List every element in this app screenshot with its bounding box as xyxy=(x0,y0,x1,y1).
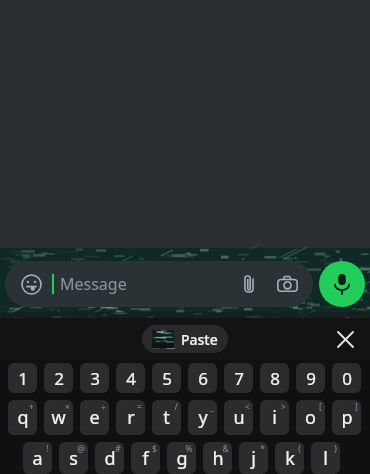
button[interactable]: 1 xyxy=(8,363,37,393)
staticText: 0 xyxy=(342,367,352,390)
staticText: ) xyxy=(334,443,337,455)
staticText: < xyxy=(245,401,250,413)
staticText: o xyxy=(305,405,316,430)
button[interactable]: j xyxy=(239,442,268,474)
button[interactable]: l xyxy=(311,442,340,474)
button[interactable]: 4 xyxy=(116,363,145,393)
staticText: # xyxy=(115,443,121,455)
staticText: f xyxy=(142,446,149,471)
staticText: g xyxy=(176,446,188,471)
staticText: / xyxy=(174,401,178,413)
staticText: 7 xyxy=(234,367,244,390)
button[interactable]: t xyxy=(152,400,181,435)
staticText: y xyxy=(198,405,208,430)
staticText: $ xyxy=(152,443,157,455)
button[interactable]: e xyxy=(80,400,109,435)
staticText: Paste xyxy=(181,330,218,349)
button[interactable]: f xyxy=(131,442,160,474)
staticText: t xyxy=(163,405,170,430)
staticText: Message xyxy=(60,273,232,295)
button[interactable]: g xyxy=(167,442,196,474)
button[interactable]: 5 xyxy=(152,363,181,393)
button[interactable]: 7 xyxy=(224,363,253,393)
button[interactable]: h xyxy=(203,442,232,474)
staticText: ÷ xyxy=(101,401,106,413)
button[interactable]: r xyxy=(116,400,145,435)
staticText: r xyxy=(127,405,135,430)
staticText: e xyxy=(89,405,100,430)
staticText: 1 xyxy=(18,367,28,390)
button[interactable]: Emoji xyxy=(5,261,313,307)
staticText: ] xyxy=(355,401,358,413)
staticText: d xyxy=(104,446,116,471)
button[interactable]: Emoji xyxy=(16,269,46,299)
staticText: h xyxy=(212,446,224,471)
button[interactable]: 0 xyxy=(332,363,361,393)
button[interactable]: o xyxy=(296,400,325,435)
button[interactable]: s xyxy=(59,442,88,474)
staticText: _ xyxy=(210,401,214,413)
button[interactable]: w xyxy=(44,400,73,435)
button[interactable]: 2 xyxy=(44,363,73,393)
staticText: & xyxy=(222,443,229,455)
staticText: w xyxy=(51,405,66,430)
button[interactable]: y xyxy=(188,400,217,435)
button[interactable]: 9 xyxy=(296,363,325,393)
button[interactable]: Attach xyxy=(232,267,266,301)
staticText: @ xyxy=(77,443,85,455)
staticText: % xyxy=(185,443,193,455)
staticText: × xyxy=(65,401,70,413)
staticText: > xyxy=(281,401,286,413)
button[interactable]: 3 xyxy=(80,363,109,393)
staticText: 5 xyxy=(162,367,172,390)
button[interactable]: Close suggestions xyxy=(330,324,360,354)
button[interactable]: Paste xyxy=(142,325,228,353)
staticText: u xyxy=(233,405,245,430)
button[interactable]: 6 xyxy=(188,363,217,393)
button[interactable]: Camera xyxy=(270,267,304,301)
staticText: 8 xyxy=(270,367,280,390)
staticText: a xyxy=(32,446,43,471)
staticText: p xyxy=(341,405,353,430)
button[interactable]: q xyxy=(8,400,37,435)
staticText: j xyxy=(251,446,256,471)
staticText: l xyxy=(323,446,328,471)
button[interactable]: Voice message xyxy=(319,261,365,307)
staticText: ( xyxy=(298,443,301,455)
button[interactable]: u xyxy=(224,400,253,435)
staticText: 4 xyxy=(126,367,136,390)
button[interactable]: 8 xyxy=(260,363,289,393)
staticText: 6 xyxy=(198,367,208,390)
staticText: = xyxy=(137,401,142,413)
button[interactable]: a xyxy=(23,442,52,474)
staticText: i xyxy=(272,405,277,430)
staticText: ! xyxy=(46,443,49,455)
staticText: [ xyxy=(319,401,322,413)
staticText: 3 xyxy=(90,367,100,390)
button[interactable]: i xyxy=(260,400,289,435)
staticText: q xyxy=(17,405,29,430)
staticText: 9 xyxy=(306,367,316,390)
button[interactable]: p xyxy=(332,400,361,435)
button[interactable]: k xyxy=(275,442,304,474)
staticText: 2 xyxy=(54,367,64,390)
staticText: * xyxy=(260,443,265,455)
staticText: s xyxy=(69,446,78,471)
button[interactable]: d xyxy=(95,442,124,474)
staticText: + xyxy=(29,401,34,413)
staticText: k xyxy=(285,446,295,471)
